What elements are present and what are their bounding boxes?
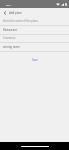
staticText: storing room xyxy=(3,45,20,49)
staticText: Enter the name of the place xyxy=(3,19,38,23)
button[interactable]: Save xyxy=(0,55,69,65)
button[interactable]: Restaurant xyxy=(0,26,69,35)
staticText: Save xyxy=(32,58,38,62)
button[interactable]: Enter the name of the place xyxy=(0,17,69,26)
staticText: Comment xyxy=(3,36,16,40)
button[interactable]: storing room xyxy=(0,43,69,52)
button[interactable]: Back xyxy=(0,8,9,18)
staticText: 9:41 xyxy=(6,3,11,6)
staticText: Restaurant xyxy=(3,28,17,32)
staticText: Add place xyxy=(9,11,22,15)
button[interactable]: Comment xyxy=(0,34,69,43)
